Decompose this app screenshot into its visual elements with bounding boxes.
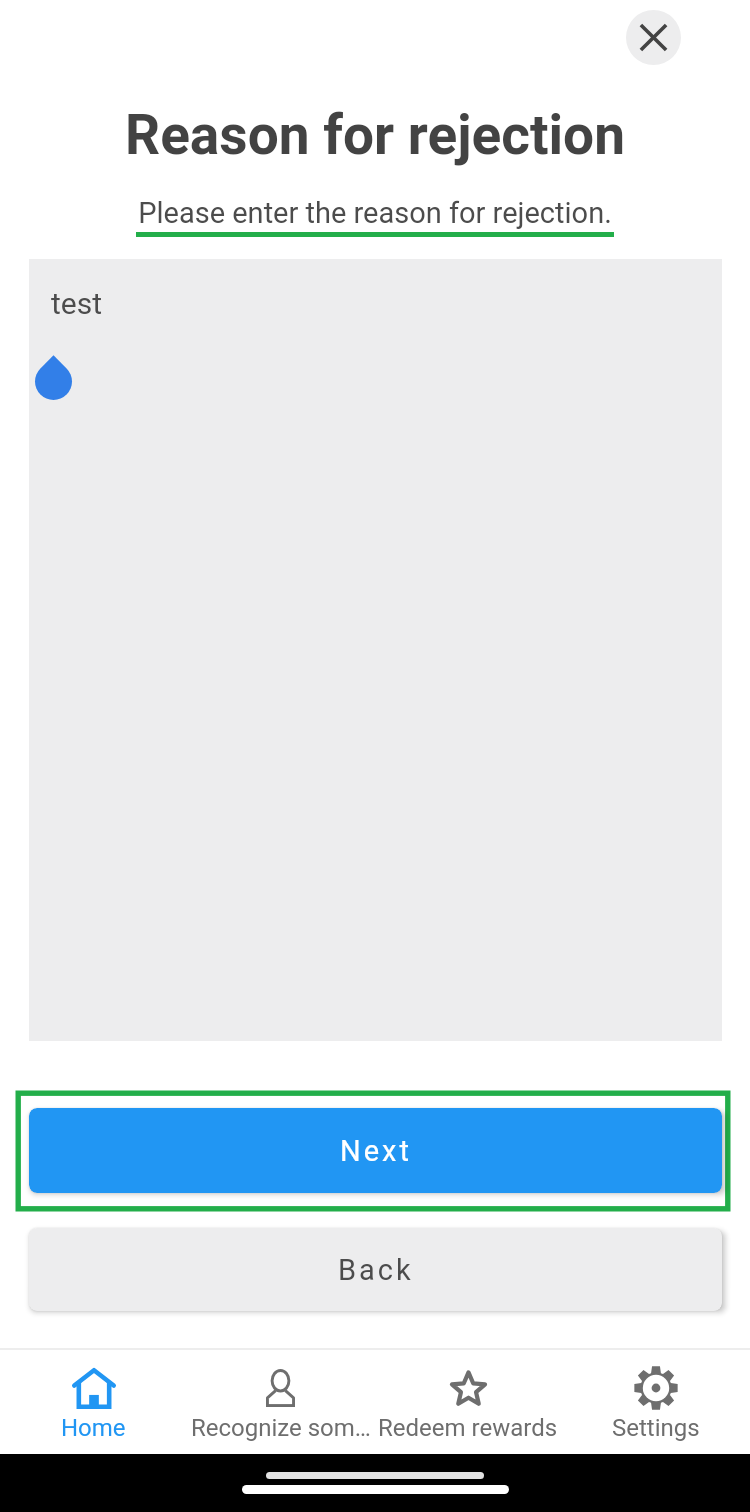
button[interactable]: Settings xyxy=(562,1350,750,1454)
staticText: Home xyxy=(61,1414,126,1442)
staticText: test xyxy=(51,286,103,321)
staticText: Settings xyxy=(612,1414,700,1442)
button[interactable]: Recognize som… xyxy=(187,1350,374,1454)
staticText: Reason for rejection xyxy=(0,103,750,167)
staticText: Back xyxy=(338,1253,414,1287)
button[interactable]: Redeem rewards xyxy=(374,1350,562,1454)
button[interactable]: Next xyxy=(29,1108,722,1193)
button[interactable]: Home xyxy=(0,1350,187,1454)
button[interactable]: test xyxy=(29,259,722,1041)
staticText: Recognize som… xyxy=(191,1414,371,1442)
button[interactable]: Back xyxy=(29,1228,722,1311)
staticText: Next xyxy=(340,1134,412,1168)
staticText: Please enter the reason for rejection. xyxy=(0,196,750,230)
staticText: Redeem rewards xyxy=(378,1414,558,1442)
button[interactable]: Close xyxy=(626,10,681,65)
